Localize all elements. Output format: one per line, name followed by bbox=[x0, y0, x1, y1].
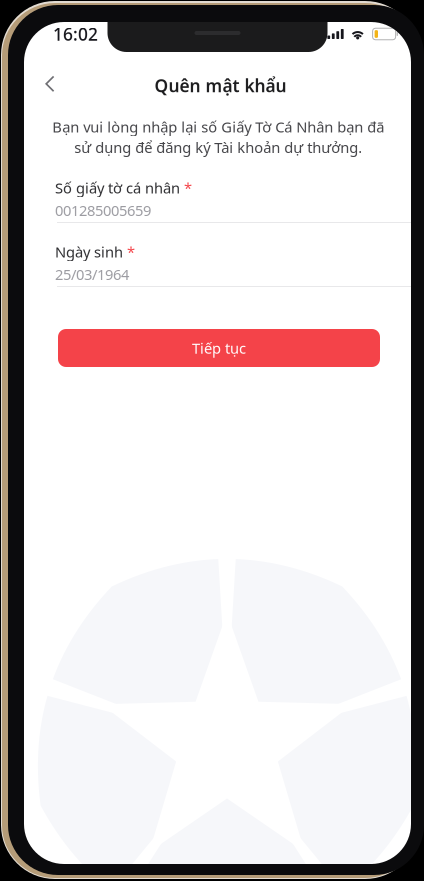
staticText: Bạn vui lòng nhập lại số Giấy Tờ Cá Nhân… bbox=[52, 117, 384, 157]
staticText: * bbox=[184, 178, 192, 197]
button[interactable]: Tiếp tục bbox=[58, 329, 380, 367]
staticText: 25/03/1964 bbox=[55, 264, 129, 284]
staticText: Tiếp tục bbox=[192, 338, 246, 358]
staticText: * bbox=[127, 242, 135, 261]
staticText: Ngày sinh bbox=[55, 242, 123, 261]
button[interactable]: Back bbox=[31, 65, 69, 103]
staticText: Số giấy tờ cá nhân bbox=[55, 178, 180, 197]
staticText: 001285005659 bbox=[55, 200, 151, 220]
staticText: 16:02 bbox=[53, 22, 98, 45]
staticText: Quên mật khẩu bbox=[154, 74, 286, 97]
